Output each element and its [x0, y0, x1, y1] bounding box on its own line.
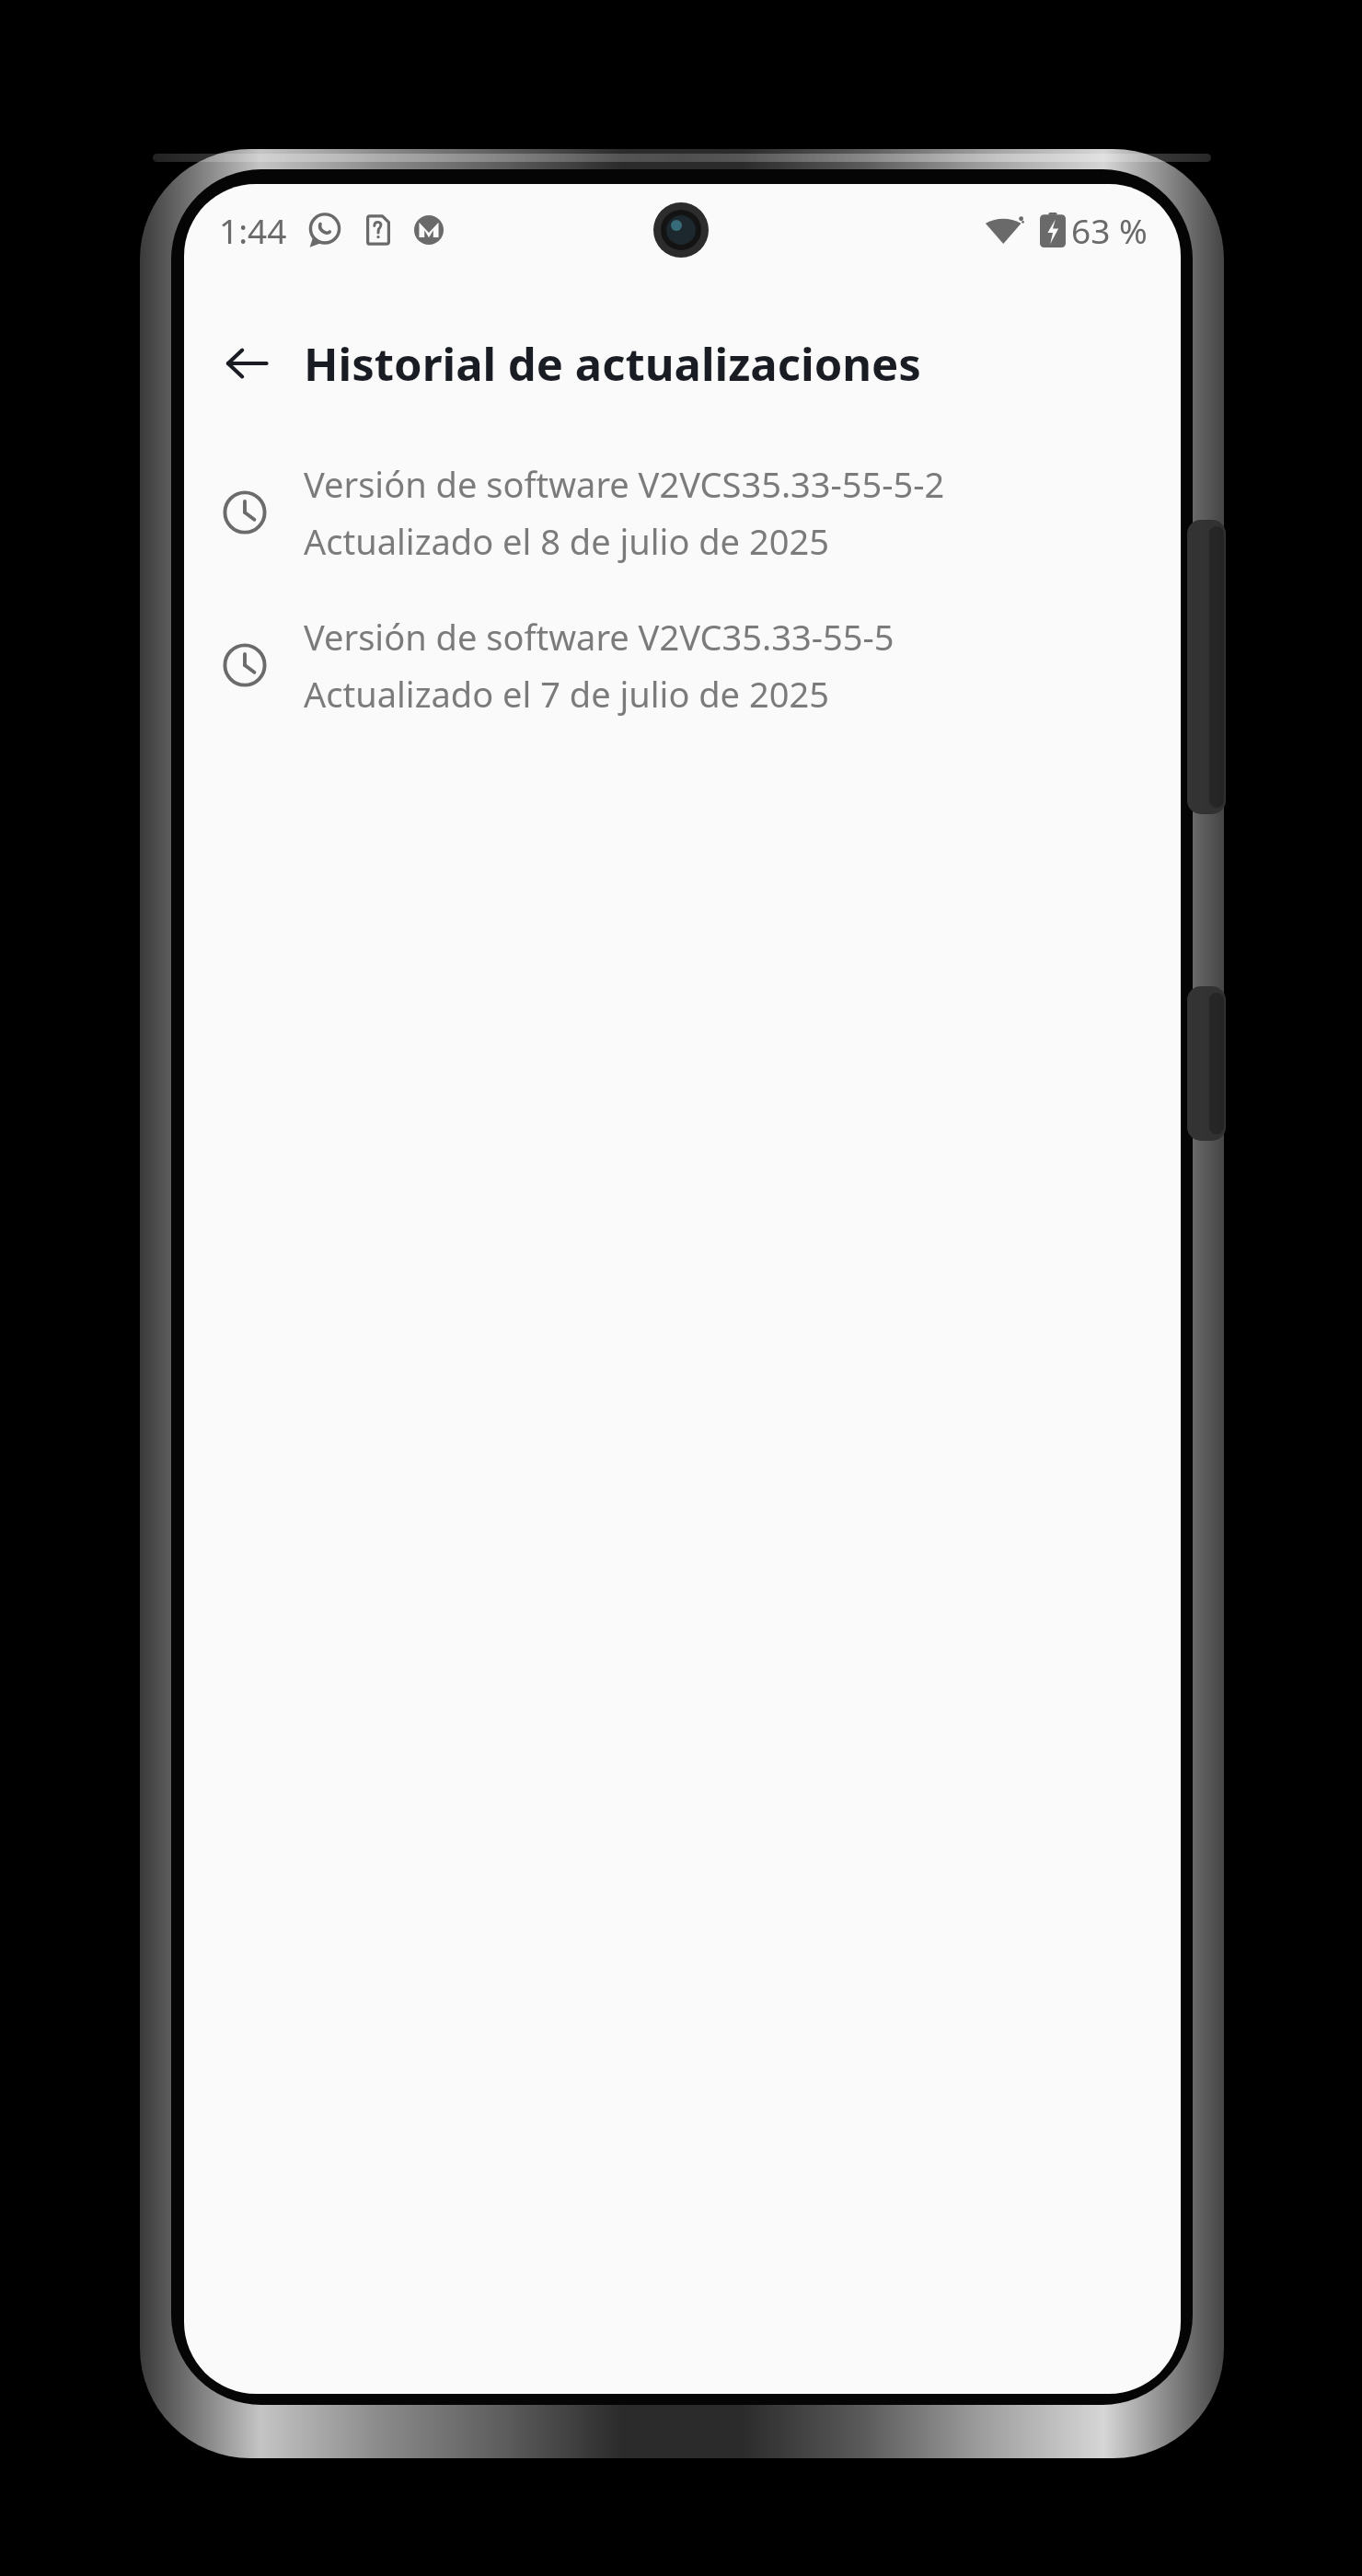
staticText: Versión de software V2VC35.33-55-5	[304, 613, 895, 661]
button[interactable]: Versión de software V2VCS35.33-55-5-2	[184, 451, 1181, 574]
button[interactable]: Atrás	[210, 327, 283, 400]
staticText: 63 %	[1071, 207, 1148, 253]
staticText: Actualizado el 8 de julio de 2025	[304, 517, 829, 565]
staticText: Historial de actualizaciones	[304, 333, 921, 395]
button[interactable]: Versión de software V2VC35.33-55-5	[184, 604, 1181, 727]
staticText: Actualizado el 7 de julio de 2025	[304, 670, 829, 718]
staticText: 1:44	[219, 207, 287, 253]
staticText: Versión de software V2VCS35.33-55-5-2	[304, 460, 945, 508]
